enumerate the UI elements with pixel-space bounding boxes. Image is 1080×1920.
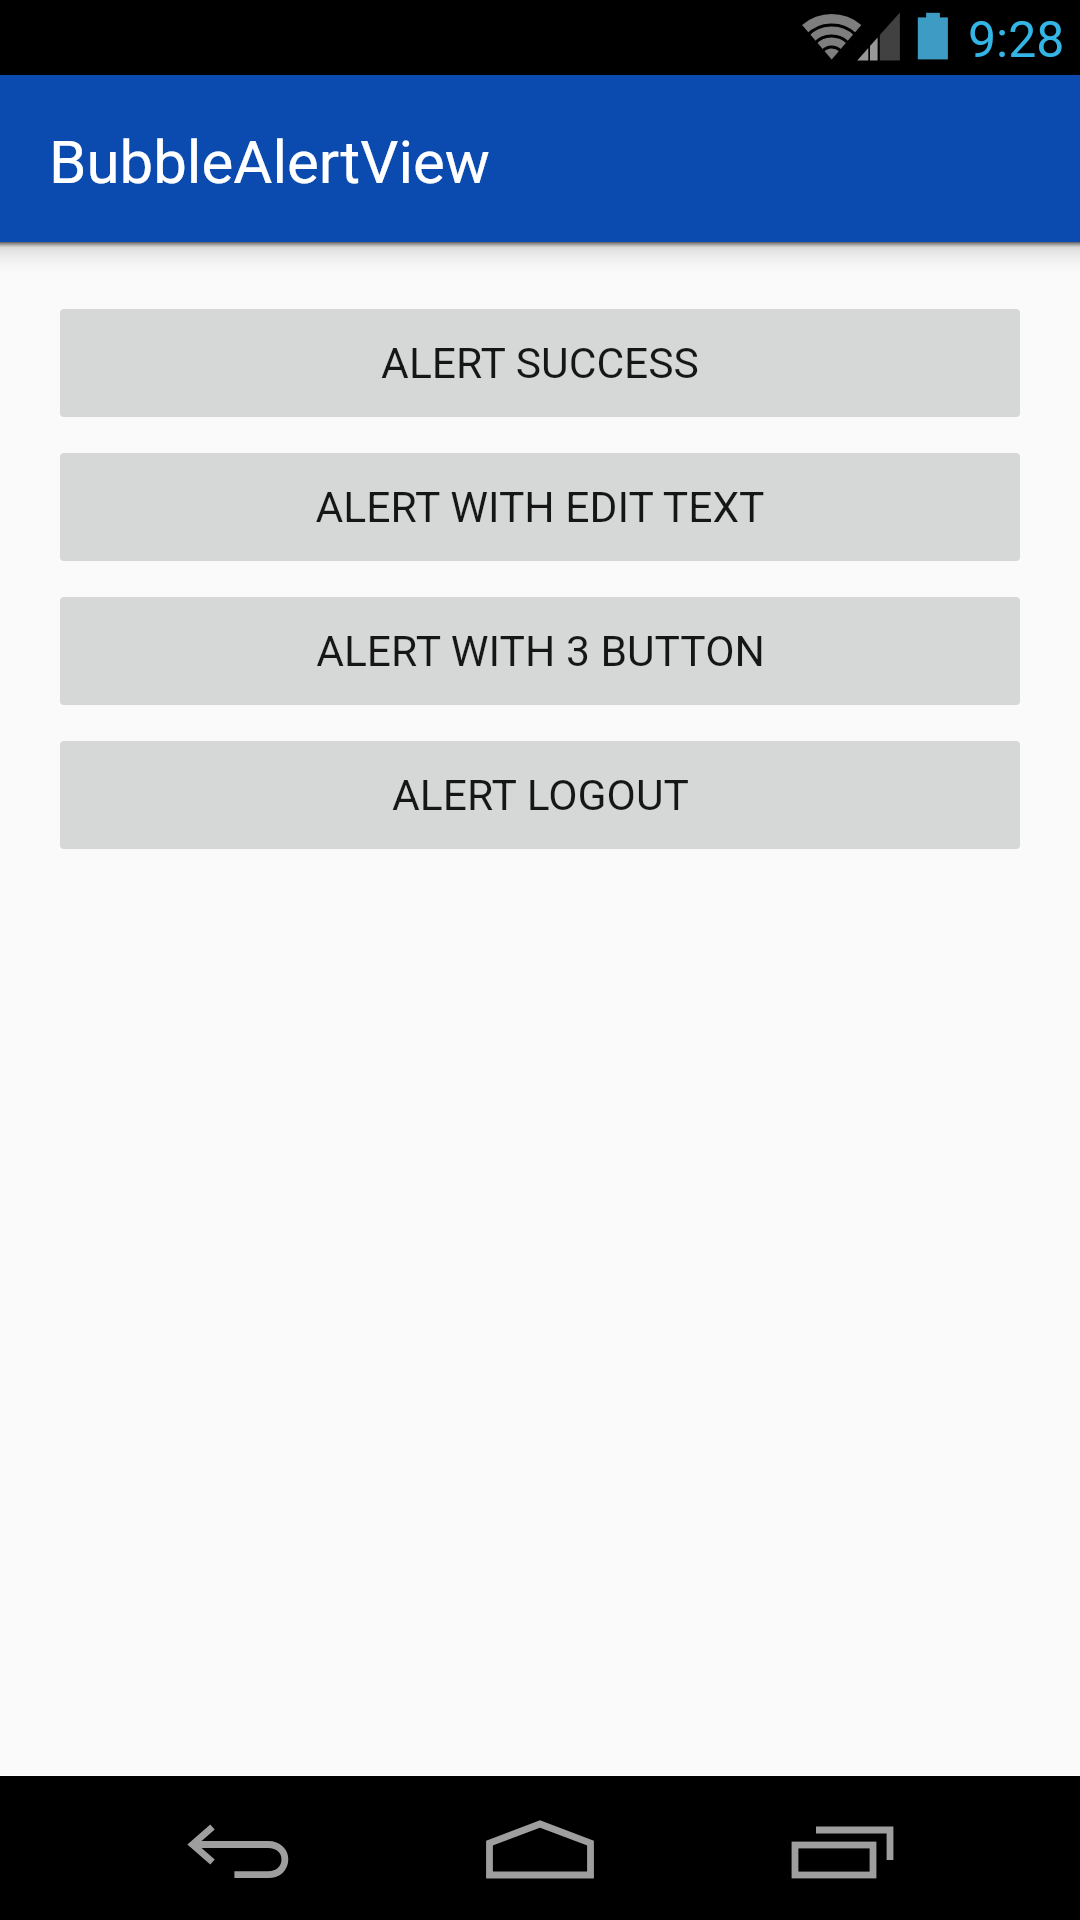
button[interactable]: ALERT SUCCESS xyxy=(60,309,1020,417)
button[interactable]: Recent apps xyxy=(720,1776,960,1920)
staticText: ALERT LOGOUT xyxy=(392,770,689,820)
staticText: ALERT SUCCESS xyxy=(381,338,699,388)
staticText: ALERT WITH 3 BUTTON xyxy=(316,626,765,676)
button[interactable]: Home xyxy=(420,1776,660,1920)
button[interactable]: ALERT WITH EDIT TEXT xyxy=(60,453,1020,561)
button[interactable]: ALERT WITH 3 BUTTON xyxy=(60,597,1020,705)
staticText: BubbleAlertView xyxy=(49,127,490,197)
button[interactable]: Back xyxy=(120,1776,360,1920)
staticText: 9:28 xyxy=(968,11,1065,70)
staticText: ALERT WITH EDIT TEXT xyxy=(315,482,765,532)
button[interactable]: ALERT LOGOUT xyxy=(60,741,1020,849)
